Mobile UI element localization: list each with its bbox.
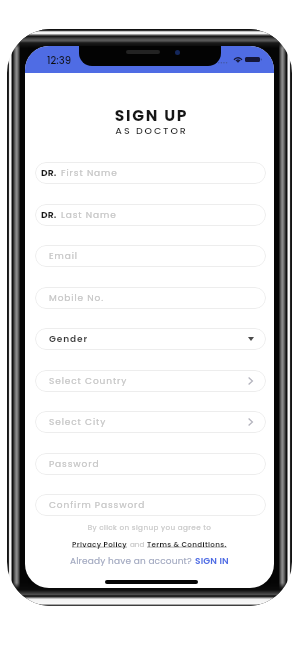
staticText: Select City [49, 416, 107, 429]
button[interactable]: DR. [35, 162, 266, 184]
staticText: Select Country [49, 375, 128, 388]
staticText: Last Name [61, 209, 117, 222]
button[interactable]: SIGN IN [195, 555, 229, 568]
staticText: Gender [49, 333, 89, 346]
staticText: Mobile No. [49, 292, 104, 305]
button[interactable]: Gender [35, 328, 266, 350]
staticText: AS DOCTOR [27, 124, 274, 137]
button[interactable]: DR. [35, 204, 266, 226]
button[interactable]: Email [35, 245, 266, 267]
button[interactable]: Mobile No. [35, 287, 266, 309]
staticText: and [128, 539, 147, 549]
staticText: Password [49, 458, 100, 471]
button[interactable]: Terms & Conditions. [147, 539, 227, 549]
staticText: SIGN UP [27, 105, 274, 127]
button[interactable]: Select City [35, 411, 266, 433]
staticText: Confirm Password [49, 499, 146, 512]
button[interactable]: Confirm Password [35, 494, 266, 516]
other: Open picker [248, 377, 253, 385]
other: Open picker [248, 418, 253, 426]
staticText: 12:39 [47, 53, 72, 67]
staticText: Already have an account? [70, 555, 195, 568]
staticText: DR. [41, 167, 57, 180]
staticText: DR. [41, 209, 57, 222]
button[interactable]: Password [35, 453, 266, 475]
staticText: First Name [61, 167, 118, 180]
staticText: By click on signup you agree to [25, 522, 274, 532]
button[interactable]: Select Country [35, 370, 266, 392]
button[interactable]: Privacy Policy [72, 539, 128, 549]
staticText: Email [49, 250, 78, 263]
other: Open gender dropdown [248, 337, 254, 341]
